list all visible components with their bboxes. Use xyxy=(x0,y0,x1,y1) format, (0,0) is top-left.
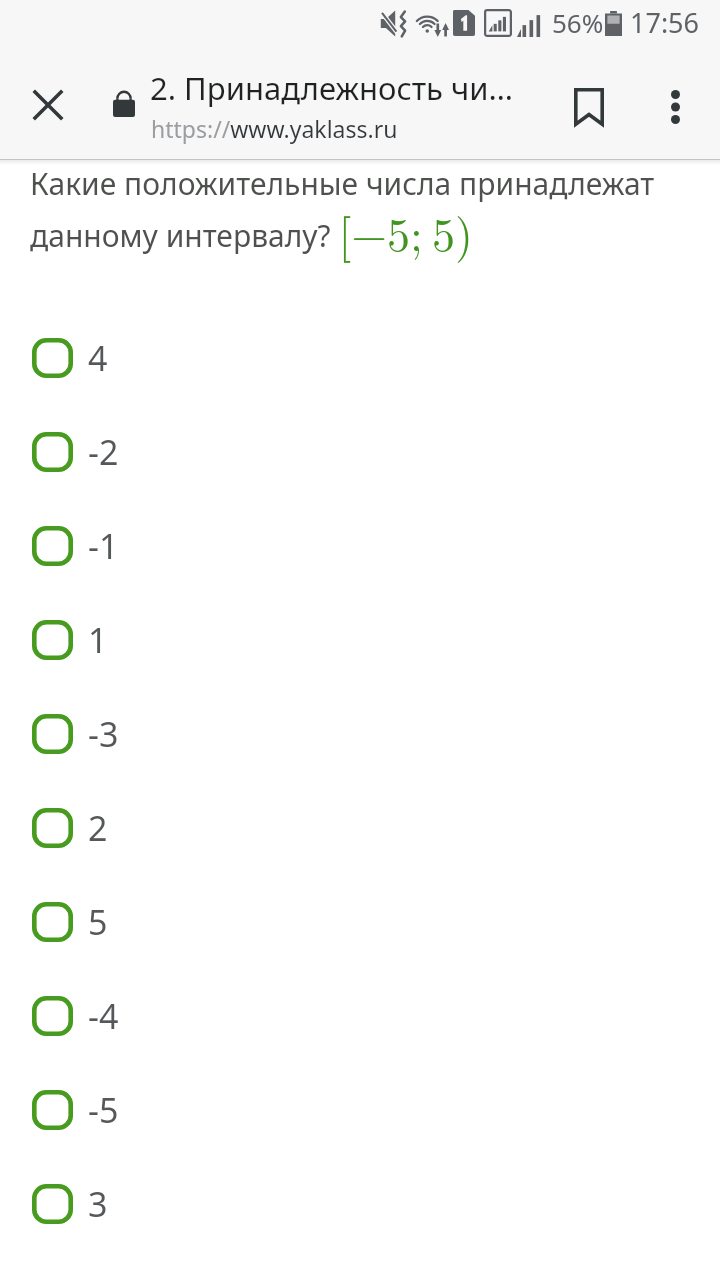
button[interactable]: -2 xyxy=(0,432,720,526)
button[interactable]: 4 xyxy=(0,338,720,432)
staticText: 1 xyxy=(88,617,108,663)
staticText: 2 xyxy=(88,805,108,851)
staticText: -5 xyxy=(88,1087,119,1133)
staticText: -1 xyxy=(88,523,119,569)
staticText: 4 xyxy=(88,335,108,381)
button[interactable]: 5 xyxy=(0,902,720,996)
button[interactable]: 1 xyxy=(0,620,720,714)
button[interactable]: Bookmark xyxy=(544,61,634,153)
staticText: 56% xyxy=(552,5,604,40)
staticText: -2 xyxy=(88,429,119,475)
staticText: -3 xyxy=(88,711,119,757)
staticText: https://www.yaklass.ru xyxy=(151,113,398,144)
staticText: 3 xyxy=(88,1181,108,1227)
staticText: Какие положительные числа принадлежат да… xyxy=(30,163,680,264)
button[interactable]: -4 xyxy=(0,996,720,1090)
button[interactable]: More options xyxy=(630,61,720,153)
staticText: -4 xyxy=(88,993,119,1039)
staticText: 17:56 xyxy=(630,4,700,41)
staticText: 2. Принадлежность чи… xyxy=(150,67,514,109)
button[interactable]: -1 xyxy=(0,526,720,620)
button[interactable]: Close xyxy=(0,55,96,159)
button[interactable]: 3 xyxy=(0,1184,720,1278)
button[interactable]: -5 xyxy=(0,1090,720,1184)
staticText: 5 xyxy=(88,899,108,945)
button[interactable]: -3 xyxy=(0,714,720,808)
button[interactable]: 2 xyxy=(0,808,720,902)
